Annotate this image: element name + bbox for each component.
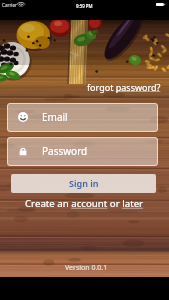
- staticText: Sign in: [69, 177, 99, 189]
- staticText: 9:59 PM: [76, 3, 93, 9]
- button[interactable]: Sign in: [11, 174, 156, 193]
- staticText: Carrier: [2, 2, 17, 8]
- button[interactable]: Password: [7, 137, 158, 166]
- staticText: forgot password?: [87, 81, 161, 93]
- staticText: Email: [42, 110, 68, 124]
- staticText: Version 0.0.1: [65, 263, 108, 273]
- button[interactable]: forgot password?: [87, 81, 161, 93]
- staticText: Password: [42, 144, 88, 158]
- staticText: Create an account or later: [25, 197, 144, 210]
- button[interactable]: Email: [7, 103, 158, 132]
- button[interactable]: Create an account or later: [25, 197, 144, 210]
